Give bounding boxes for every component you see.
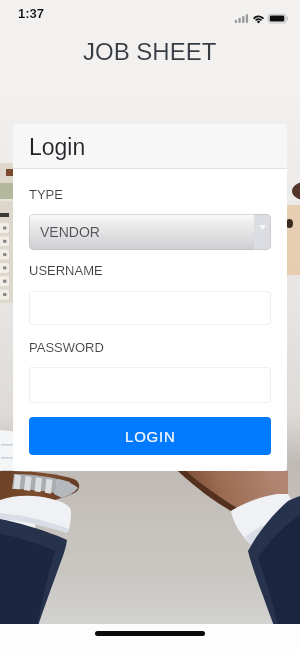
staticText: VENDOR [40, 224, 100, 240]
staticText: TYPE [29, 187, 63, 202]
button[interactable]: LOGIN [29, 417, 271, 455]
staticText: USERNAME [29, 263, 103, 278]
button[interactable] [29, 367, 271, 403]
staticText: 1:37 [18, 6, 45, 21]
staticText: JOB SHEET [83, 38, 217, 65]
staticText: LOGIN [125, 428, 176, 445]
staticText: PASSWORD [29, 340, 104, 355]
staticText: Login [29, 134, 86, 160]
button[interactable] [29, 291, 271, 325]
button[interactable]: VENDOR [29, 214, 271, 250]
